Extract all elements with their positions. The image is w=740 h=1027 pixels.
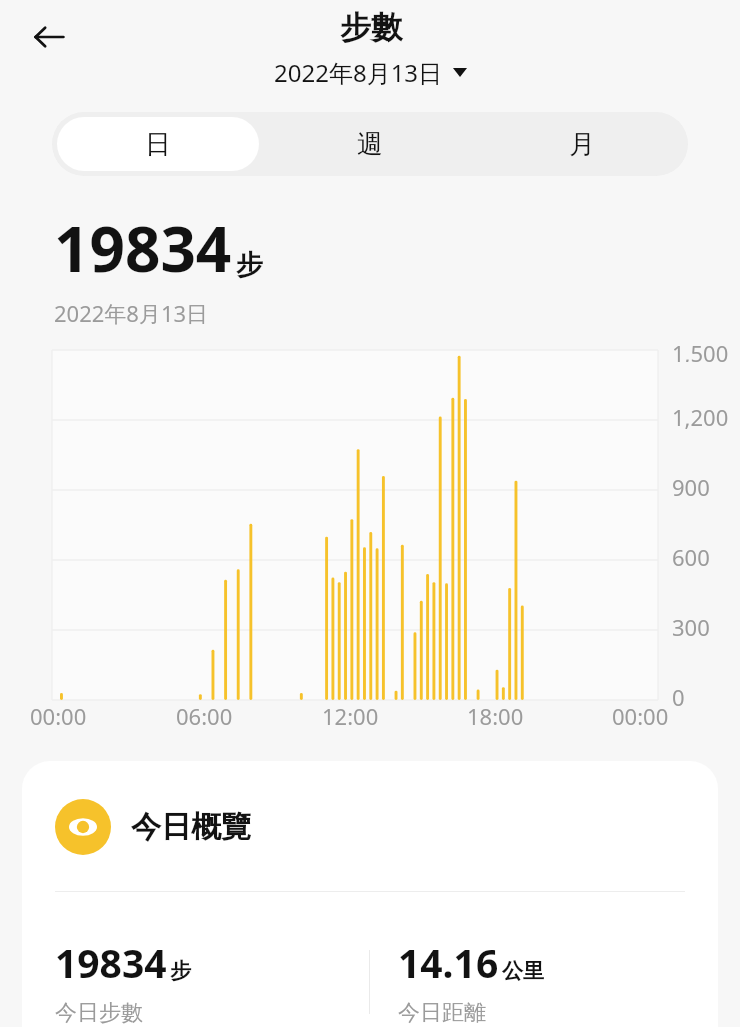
staticText: 18:00 [467, 701, 524, 731]
staticText: 0 [672, 682, 685, 712]
staticText: 今日距離 [398, 999, 486, 1027]
staticText: 300 [672, 612, 710, 642]
staticText: 日 [145, 128, 171, 161]
staticText: 2022年8月13日 [54, 298, 209, 328]
staticText: 月 [569, 128, 595, 161]
staticText: 2022年8月13日 [274, 56, 443, 89]
staticText: 公里 [502, 958, 544, 984]
staticText: 00:00 [30, 701, 87, 731]
button[interactable]: 2022年8月13日 [268, 54, 473, 91]
staticText: 1,200 [672, 402, 729, 432]
button[interactable]: 今日概覽 [22, 761, 718, 1027]
staticText: 1,500 [672, 338, 729, 362]
staticText: 步數 [340, 8, 402, 47]
staticText: 00:00 [612, 701, 669, 731]
staticText: 步 [170, 958, 191, 984]
staticText: 900 [672, 472, 710, 502]
staticText: 週 [357, 128, 383, 161]
staticText: 19834 [55, 936, 167, 989]
staticText: 今日概覽 [131, 808, 251, 846]
button[interactable]: 日 [57, 117, 259, 171]
button[interactable]: 週 [269, 117, 471, 171]
staticText: 12:00 [322, 701, 379, 731]
staticText: 步 [236, 248, 263, 282]
staticText: 今日步數 [55, 999, 143, 1027]
button[interactable]: Back [22, 10, 76, 64]
staticText: 600 [672, 542, 710, 572]
staticText: 14.16 [398, 936, 499, 989]
staticText: 19834 [54, 206, 232, 290]
staticText: 06:00 [176, 701, 233, 731]
button[interactable]: 月 [481, 117, 683, 171]
